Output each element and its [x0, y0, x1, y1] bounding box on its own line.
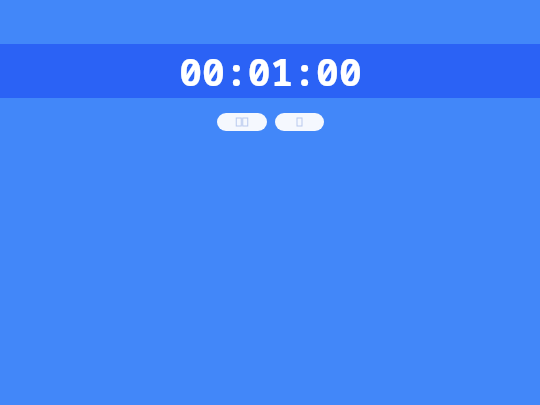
staticText: 00:01:00 — [179, 45, 362, 97]
button[interactable]: Start timer — [217, 113, 267, 131]
button[interactable]: Reset timer — [275, 113, 324, 131]
